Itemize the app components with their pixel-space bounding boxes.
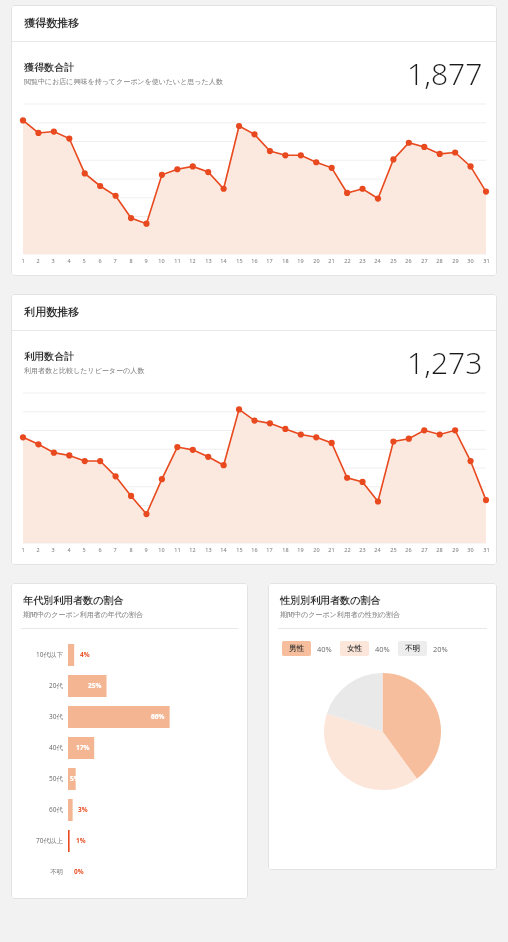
staticText: 8 [129, 257, 133, 264]
staticText: 8 [129, 546, 133, 553]
staticText: 不明 [405, 644, 420, 653]
staticText: 31 [483, 546, 490, 553]
staticText: 1 [21, 257, 25, 264]
staticText: 17% [76, 743, 90, 752]
staticText: 3 [51, 257, 55, 264]
staticText: 14 [220, 546, 227, 553]
staticText: 4 [67, 546, 71, 553]
staticText: 24 [374, 546, 381, 553]
staticText: 獲得数合計 [24, 61, 74, 74]
staticText: 男性 [289, 644, 304, 653]
staticText: 1% [76, 836, 86, 845]
button[interactable]: 利用数推移 [11, 294, 497, 330]
staticText: 13 [205, 546, 212, 553]
staticText: 利用者数と比較したリピーターの人数 [24, 366, 145, 375]
staticText: 50代 [49, 774, 63, 783]
staticText: 年代別利用者数の割合 [23, 594, 124, 607]
staticText: 12 [189, 546, 196, 553]
staticText: 29 [452, 546, 459, 553]
staticText: 22 [344, 257, 351, 264]
staticText: 70代以上 [36, 836, 63, 845]
button[interactable]: 不明 [398, 641, 427, 656]
staticText: 2 [36, 546, 40, 553]
staticText: 7 [113, 546, 117, 553]
staticText: 22 [344, 546, 351, 553]
staticText: 5% [70, 774, 80, 783]
staticText: 1 [21, 546, 25, 553]
staticText: 3 [51, 546, 55, 553]
button[interactable]: 10代以下 [11, 639, 248, 670]
staticText: 利用数合計 [24, 350, 74, 363]
other: 性別別利用者数の円グラフ [324, 673, 441, 790]
staticText: 16 [251, 546, 258, 553]
staticText: 30代 [49, 712, 63, 721]
staticText: 0% [74, 867, 84, 876]
staticText: 7 [113, 257, 117, 264]
button[interactable]: 50代 [11, 763, 248, 794]
staticText: 不明 [50, 868, 63, 876]
staticText: 19 [297, 546, 304, 553]
button[interactable]: 女性 [340, 641, 369, 656]
staticText: 23 [359, 257, 366, 264]
staticText: 24 [374, 257, 381, 264]
staticText: 26 [405, 257, 412, 264]
staticText: 9 [144, 257, 148, 264]
button[interactable]: 獲得数推移 [11, 5, 497, 41]
button[interactable]: 40代 [11, 732, 248, 763]
staticText: 10代以下 [36, 650, 63, 659]
staticText: 利用数推移 [24, 305, 79, 319]
staticText: 3% [78, 805, 88, 814]
staticText: 21 [328, 257, 335, 264]
staticText: 28 [436, 257, 443, 264]
staticText: 4% [80, 650, 90, 659]
staticText: 15 [236, 257, 243, 264]
staticText: 6 [98, 257, 102, 264]
staticText: 27 [421, 546, 428, 553]
staticText: 6 [98, 546, 102, 553]
staticText: 60代 [49, 805, 63, 814]
staticText: 5 [82, 257, 86, 264]
button[interactable]: 男性 [282, 641, 311, 656]
staticText: 女性 [347, 644, 362, 653]
staticText: 11 [174, 546, 181, 553]
staticText: 14 [220, 257, 227, 264]
button[interactable]: 30代 [11, 701, 248, 732]
staticText: 27 [421, 257, 428, 264]
staticText: 1,877 [407, 53, 483, 94]
staticText: 2 [36, 257, 40, 264]
staticText: 25% [88, 681, 102, 690]
staticText: 25 [390, 257, 397, 264]
staticText: 13 [205, 257, 212, 264]
staticText: 18 [282, 257, 289, 264]
staticText: 16 [251, 257, 258, 264]
staticText: 1,273 [407, 342, 483, 383]
staticText: 19 [297, 257, 304, 264]
staticText: 性別別利用者数の割合 [280, 594, 381, 607]
staticText: 獲得数推移 [24, 16, 79, 30]
staticText: 17 [266, 546, 273, 553]
button[interactable]: 70代以上 [11, 825, 248, 856]
staticText: 20 [313, 546, 320, 553]
staticText: 26 [405, 546, 412, 553]
staticText: 4 [67, 257, 71, 264]
staticText: 30 [467, 546, 474, 553]
staticText: 31 [483, 257, 490, 264]
staticText: 閲覧中にお店に興味を持ってクーポンを使いたいと思った人数 [24, 77, 223, 86]
staticText: 12 [189, 257, 196, 264]
staticText: 18 [282, 546, 289, 553]
staticText: 30 [467, 257, 474, 264]
staticText: 66% [151, 712, 165, 721]
button[interactable]: 60代 [11, 794, 248, 825]
staticText: 10 [158, 257, 165, 264]
staticText: 10 [158, 546, 165, 553]
staticText: 20% [433, 644, 448, 654]
staticText: 21 [328, 546, 335, 553]
staticText: 40% [317, 644, 332, 654]
staticText: 40% [375, 644, 390, 654]
button[interactable]: 20代 [11, 670, 248, 701]
staticText: 9 [144, 546, 148, 553]
button[interactable]: 不明 [11, 856, 248, 887]
staticText: 20代 [49, 681, 63, 690]
staticText: 23 [359, 546, 366, 553]
staticText: 29 [452, 257, 459, 264]
